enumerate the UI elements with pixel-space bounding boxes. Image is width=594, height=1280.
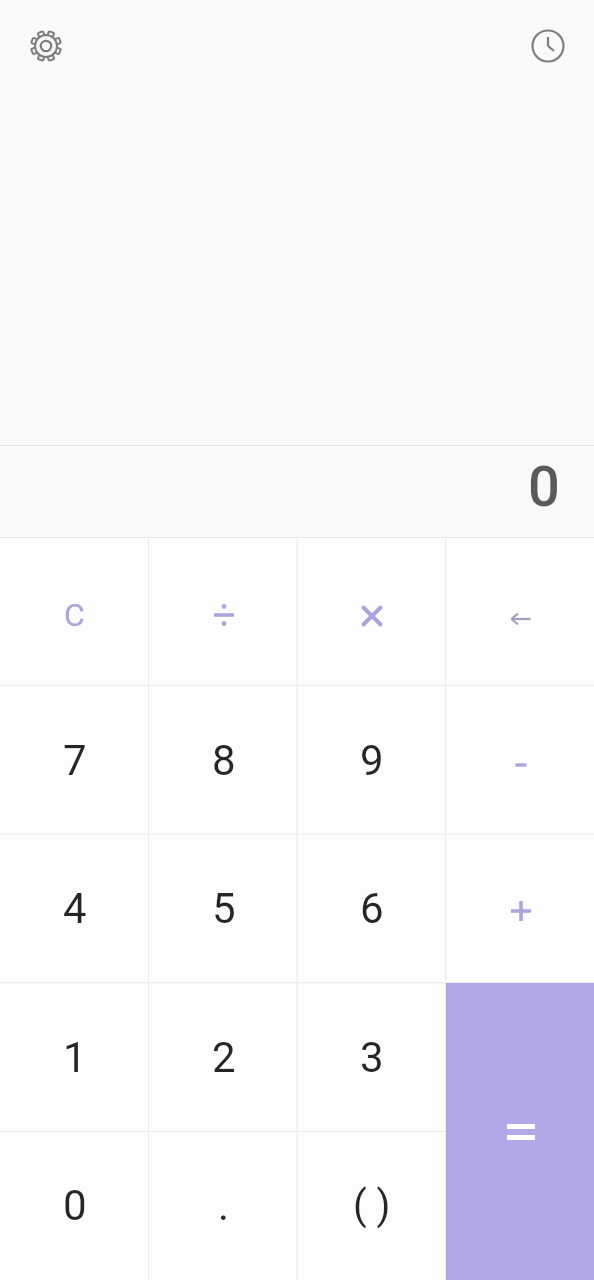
staticText: . xyxy=(218,1181,230,1230)
button[interactable]: 1 xyxy=(0,983,149,1132)
button[interactable]: 2 xyxy=(149,983,298,1132)
button[interactable]: ( ) xyxy=(297,1131,446,1280)
staticText: C xyxy=(64,596,85,634)
button[interactable]: 3 xyxy=(297,983,446,1132)
staticText: 3 xyxy=(360,1033,384,1082)
button[interactable]: 9 xyxy=(297,686,446,835)
button[interactable] xyxy=(446,537,594,686)
button[interactable]: 0 xyxy=(0,1131,149,1280)
button[interactable]: C xyxy=(0,537,149,686)
staticText: ( ) xyxy=(353,1182,391,1229)
button[interactable]: . xyxy=(149,1131,298,1280)
staticText: 1 xyxy=(63,1033,87,1082)
button[interactable] xyxy=(149,537,298,686)
staticText: 0 xyxy=(528,454,560,520)
button[interactable]: 7 xyxy=(0,686,149,835)
button[interactable] xyxy=(297,537,446,686)
button[interactable]: 4 xyxy=(0,834,149,983)
button[interactable]: 6 xyxy=(297,834,446,983)
staticText: 9 xyxy=(360,736,384,785)
staticText: 0 xyxy=(63,1181,87,1230)
button[interactable]: 8 xyxy=(149,686,298,835)
button[interactable] xyxy=(24,24,68,68)
staticText: 7 xyxy=(63,736,87,785)
button[interactable] xyxy=(446,686,594,835)
button[interactable] xyxy=(526,24,570,68)
button[interactable]: 5 xyxy=(149,834,298,983)
staticText: 6 xyxy=(360,884,384,933)
staticText: 4 xyxy=(63,884,87,933)
button[interactable] xyxy=(446,834,594,983)
staticText: 5 xyxy=(212,884,236,933)
staticText: 2 xyxy=(212,1033,236,1082)
button[interactable] xyxy=(446,983,594,1280)
staticText: 8 xyxy=(212,736,236,785)
